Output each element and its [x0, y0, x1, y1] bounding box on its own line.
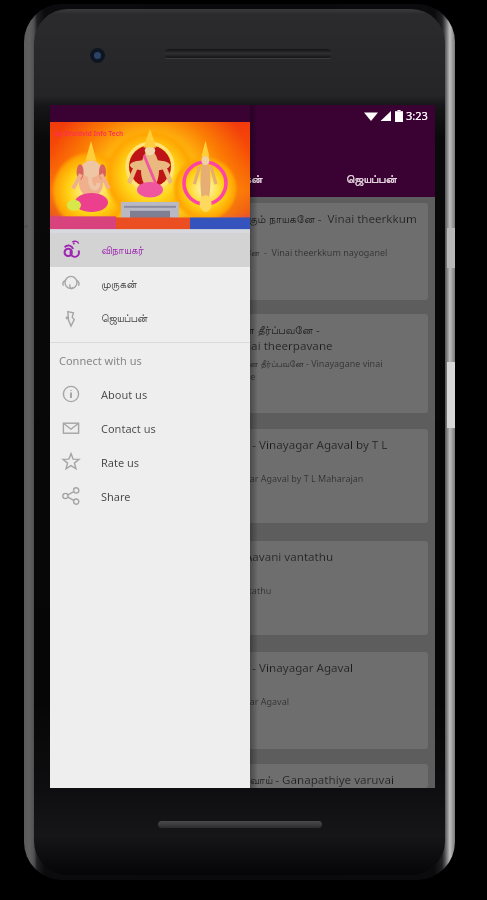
staticText: விநாயகர் அகவல் - விநாயகர் அகவல் - Vinaya… — [67, 437, 388, 468]
staticText: விநாயகனே வினை தீர்ப்பவனே - விநாயகனே வினை… — [67, 357, 383, 396]
staticText: விநாயகர் அகவல் - விநாயகர் அகவல் - Vinaya… — [67, 472, 364, 484]
staticText: Connect with us — [59, 353, 142, 368]
staticText: Share — [101, 489, 131, 504]
button[interactable]: விநாயகர் — [50, 233, 250, 267]
button[interactable]: விநாயகர் அகவல் - விநாயகர் அகவல் - Vinaya… — [57, 429, 428, 523]
button[interactable]: முருகன் — [179, 161, 307, 197]
button[interactable]: ஆவணி வந்தது - ஆவணி வந்தது - Aavani vanta… — [57, 541, 428, 635]
staticText: Contact us — [101, 421, 156, 436]
staticText: விநாயகர் அகவல் - விநாயகர் அகவல் - Vinaya… — [67, 660, 354, 691]
button[interactable]: Contact us — [50, 411, 250, 445]
button[interactable]: விநாயகர் — [50, 161, 179, 197]
button[interactable]: ஜெயப்பன் — [50, 301, 250, 335]
button[interactable]: ஜெயப்பன் — [307, 161, 435, 197]
button[interactable]: வினை தீர்க்கும் நாயகனே - வினை தீர்க்கும்… — [57, 203, 428, 300]
staticText: விநாயகனே வினை - விநாயகனே வினை தீர்ப்பவனே… — [67, 322, 333, 353]
button[interactable]: விநாயகனே வினை - விநாயகனே வினை தீர்ப்பவனே… — [57, 314, 428, 413]
staticText: ஆவணி வந்தது - ஆவணி வந்தது - Aavani vanta… — [67, 584, 272, 596]
staticText: விநாயகர் — [101, 245, 144, 256]
button[interactable]: கணபதியே வருவாய் - கணபதியே வருவாய் - Gana… — [57, 764, 428, 788]
staticText: Rate us — [101, 455, 140, 470]
button[interactable]: About us — [50, 377, 250, 411]
staticText: ஜெயப்பன் — [101, 313, 148, 324]
staticText: ஆவணி வந்தது - ஆவணி வந்தது - Aavani vanta… — [67, 549, 334, 580]
staticText: முருகன் — [223, 173, 263, 185]
staticText: by Droidvid Info Tech — [55, 129, 124, 138]
staticText: முருகன் — [101, 279, 137, 290]
staticText: வினை தீர்க்கும் நாயகனே - வினை தீர்க்கும்… — [67, 211, 417, 242]
staticText: கணபதியே வருவாய் - கணபதியே வருவாய் - Gana… — [67, 772, 394, 788]
button[interactable]: விநாயகர் அகவல் - விநாயகர் அகவல் - Vinaya… — [57, 652, 428, 749]
button[interactable]: முருகன் — [50, 267, 250, 301]
staticText: வினை தீர்க்கும் நாயகனே - வினை தீர்க்கும்… — [67, 246, 388, 258]
button[interactable]: Rate us — [50, 445, 250, 479]
staticText: About us — [101, 387, 148, 402]
staticText: 3:23 — [406, 108, 428, 123]
staticText: விநாயகர் — [91, 173, 138, 185]
staticText: ஜெயப்பன் — [346, 173, 397, 185]
button[interactable]: Share — [50, 479, 250, 513]
staticText: விநாயகர் அகவல் - விநாயகர் அகவல் - Vinaya… — [67, 695, 290, 707]
